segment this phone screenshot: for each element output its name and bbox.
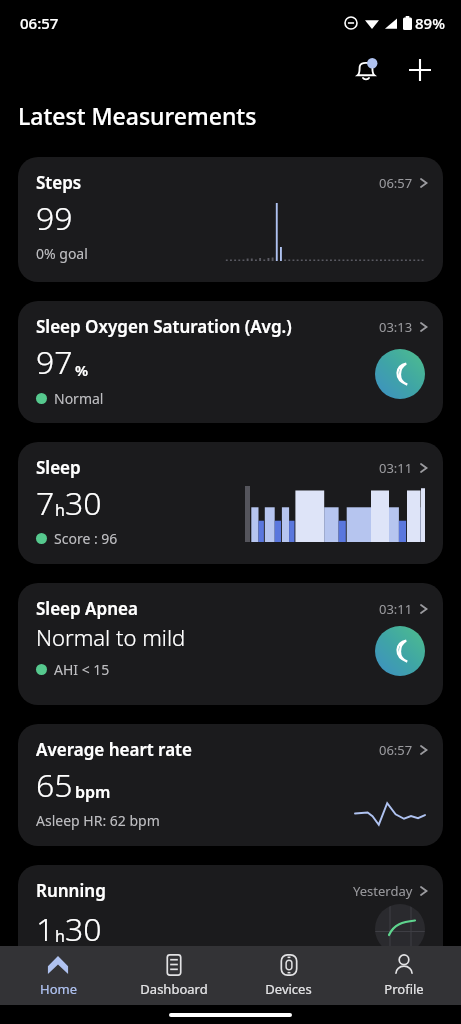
button[interactable]: Add [397,47,443,93]
staticText: Average heart rate [36,738,192,761]
staticText: 06:57 [379,741,413,759]
staticText: 89% [415,13,445,33]
staticText: bpm [75,781,111,803]
staticText: Score : 96 [54,529,118,548]
staticText: Yesterday [353,882,413,900]
staticText: Home [40,980,77,998]
button[interactable]: Sleep Apnea [18,583,443,705]
staticText: h [55,925,65,947]
staticText: % [75,360,89,380]
staticText: 06:57 [379,174,413,192]
staticText: Dashboard [140,980,208,998]
staticText: 65 [36,763,73,807]
staticText: Asleep HR: 62 bpm [36,811,160,830]
staticText: Running [36,879,106,902]
button[interactable]: Devices [231,946,346,1005]
staticText: 1 [36,907,55,951]
button[interactable]: Dashboard [116,946,231,1005]
staticText: Normal to mild [36,622,186,652]
staticText: Steps [36,171,82,194]
staticText: Sleep Oxygen Saturation (Avg.) [36,315,292,338]
staticText: Latest Measurements [18,100,257,131]
staticText: 97 [36,340,73,384]
staticText: 0% goal [36,244,88,263]
button[interactable]: Home [0,946,116,1005]
staticText: 03:13 [379,318,413,336]
staticText: 99 [36,196,73,240]
staticText: 7 [36,481,55,525]
staticText: AHI < 15 [54,660,110,679]
staticText: 30 [65,481,102,525]
button[interactable]: Average heart rate [18,724,443,846]
button[interactable]: Notifications [343,47,389,93]
staticText: 30 [65,907,102,951]
button[interactable]: Profile [346,946,461,1005]
staticText: Profile [384,980,424,998]
button[interactable]: Sleep [18,442,443,564]
staticText: Sleep [36,456,81,479]
button[interactable]: Sleep Oxygen Saturation (Avg.) [18,301,443,423]
button[interactable]: Steps [18,157,443,282]
button[interactable]: Running [18,865,443,987]
staticText: h [55,499,65,521]
staticText: Devices [265,980,312,998]
staticText: 03:11 [379,459,413,477]
staticText: Sleep Apnea [36,597,138,620]
staticText: Normal [54,389,104,408]
staticText: 06:57 [20,13,59,33]
staticText: 03:11 [379,600,413,618]
